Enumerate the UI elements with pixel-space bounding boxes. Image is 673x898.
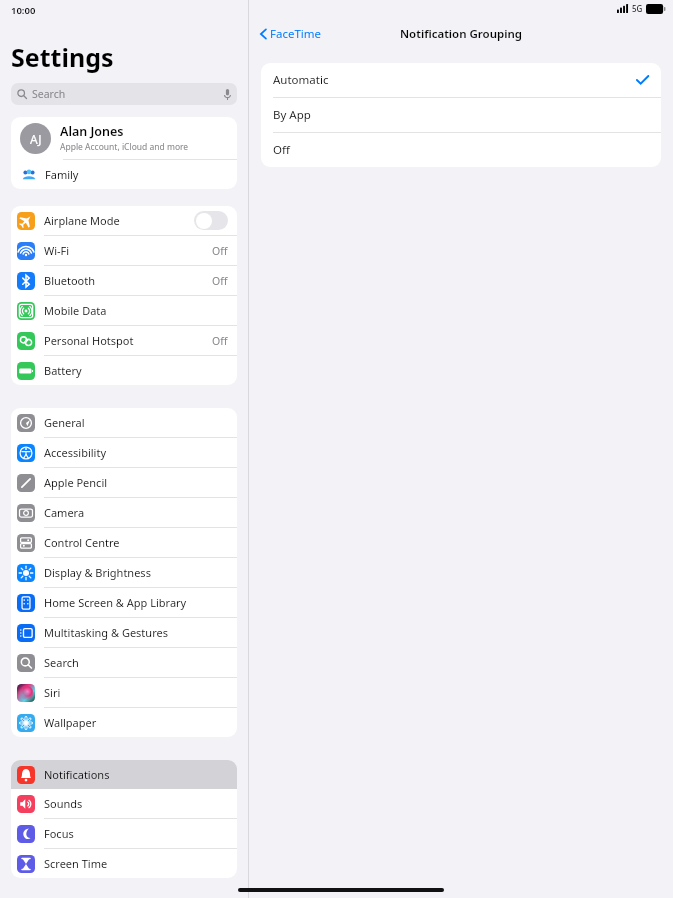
staticText: Mobile Data [44,303,107,318]
button[interactable]: Bluetooth [11,266,237,295]
button[interactable]: Mobile Data [11,296,237,325]
staticText: Focus [44,826,74,841]
staticText: Apple Account, iCloud and more [60,141,189,153]
button[interactable]: Apple Pencil [11,468,237,497]
staticText: Airplane Mode [44,213,120,228]
staticText: Alan Jones [60,123,124,140]
button[interactable]: By App [261,98,661,132]
staticText: Search [32,87,66,101]
staticText: Off [212,274,228,288]
button[interactable]: Airplane Mode [11,206,237,235]
button[interactable]: Automatic [261,63,661,97]
staticText: Wi-Fi [44,243,70,258]
button[interactable]: Family [11,160,237,189]
staticText: Screen Time [44,856,108,871]
button[interactable]: Notifications [11,760,237,789]
staticText: Camera [44,505,85,520]
button[interactable]: AJ [11,117,237,159]
button[interactable]: Wallpaper [11,708,237,737]
staticText: Display & Brightness [44,565,151,580]
button[interactable]: Multitasking & Gestures [11,618,237,647]
staticText: Accessibility [44,445,107,460]
staticText: Siri [44,685,61,700]
button[interactable]: Home Screen & App Library [11,588,237,617]
staticText: Wallpaper [44,715,97,730]
staticText: Family [45,167,79,182]
staticText: 10:00 [11,4,36,17]
button[interactable]: Display & Brightness [11,558,237,587]
staticText: By App [273,107,311,123]
button[interactable]: Wi-Fi [11,236,237,265]
button[interactable]: Battery [11,356,237,385]
staticText: Apple Pencil [44,475,108,490]
staticText: AJ [30,131,42,147]
button[interactable]: FaceTime [258,24,324,44]
staticText: Home Screen & App Library [44,595,187,610]
staticText: Personal Hotspot [44,333,134,348]
staticText: Notifications [44,767,110,782]
button[interactable]: Off [261,133,661,167]
staticText: Automatic [273,72,329,88]
staticText: Sounds [44,796,83,811]
staticText: Settings [11,40,114,74]
staticText: Search [44,655,79,670]
button[interactable]: Sounds [11,789,237,818]
staticText: 5G [632,3,643,14]
staticText: FaceTime [270,26,322,42]
staticText: Control Centre [44,535,120,550]
button[interactable]: Search [11,648,237,677]
button[interactable]: Search [11,83,237,105]
button[interactable]: Personal Hotspot [11,326,237,355]
button[interactable]: General [11,408,237,437]
staticText: Off [212,334,228,348]
button[interactable]: Siri [11,678,237,707]
staticText: Battery [44,363,82,378]
button[interactable]: Camera [11,498,237,527]
staticText: Multitasking & Gestures [44,625,168,640]
staticText: Off [212,244,228,258]
staticText: Notification Grouping [400,26,523,42]
button[interactable]: Control Centre [11,528,237,557]
button[interactable]: Accessibility [11,438,237,467]
staticText: Off [273,142,290,158]
button[interactable]: Focus [11,819,237,848]
staticText: General [44,415,85,430]
staticText: Bluetooth [44,273,96,288]
button[interactable]: Screen Time [11,849,237,878]
